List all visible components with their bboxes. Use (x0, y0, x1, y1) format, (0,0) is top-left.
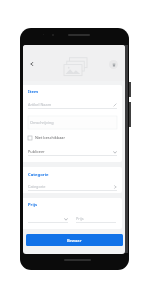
button[interactable] (28, 215, 68, 223)
staticText: Categorie (28, 184, 46, 189)
button[interactable]: Prijs (76, 215, 116, 223)
staticText: Publiceer (28, 149, 45, 154)
button[interactable]: Publiceer (28, 148, 117, 156)
button[interactable]: Bewaar (26, 234, 123, 246)
staticText: Niet beschikbaar (35, 135, 65, 140)
staticText: Categorie (28, 172, 49, 178)
button[interactable]: Niet beschikbaar (28, 134, 65, 141)
button[interactable]: Delete (109, 60, 118, 69)
button[interactable]: Categorie (28, 183, 117, 191)
staticText: Bewaar (67, 238, 82, 243)
button[interactable]: Omschrijving (28, 116, 117, 129)
staticText: Artikel Naam (28, 102, 52, 107)
button[interactable]: Artikel Naam (28, 101, 117, 109)
staticText: Prijs (28, 202, 38, 208)
staticText: Omschrijving (30, 120, 54, 125)
staticText: Prijs (76, 216, 84, 221)
staticText: Item (28, 89, 39, 95)
button[interactable]: Back (27, 59, 37, 69)
